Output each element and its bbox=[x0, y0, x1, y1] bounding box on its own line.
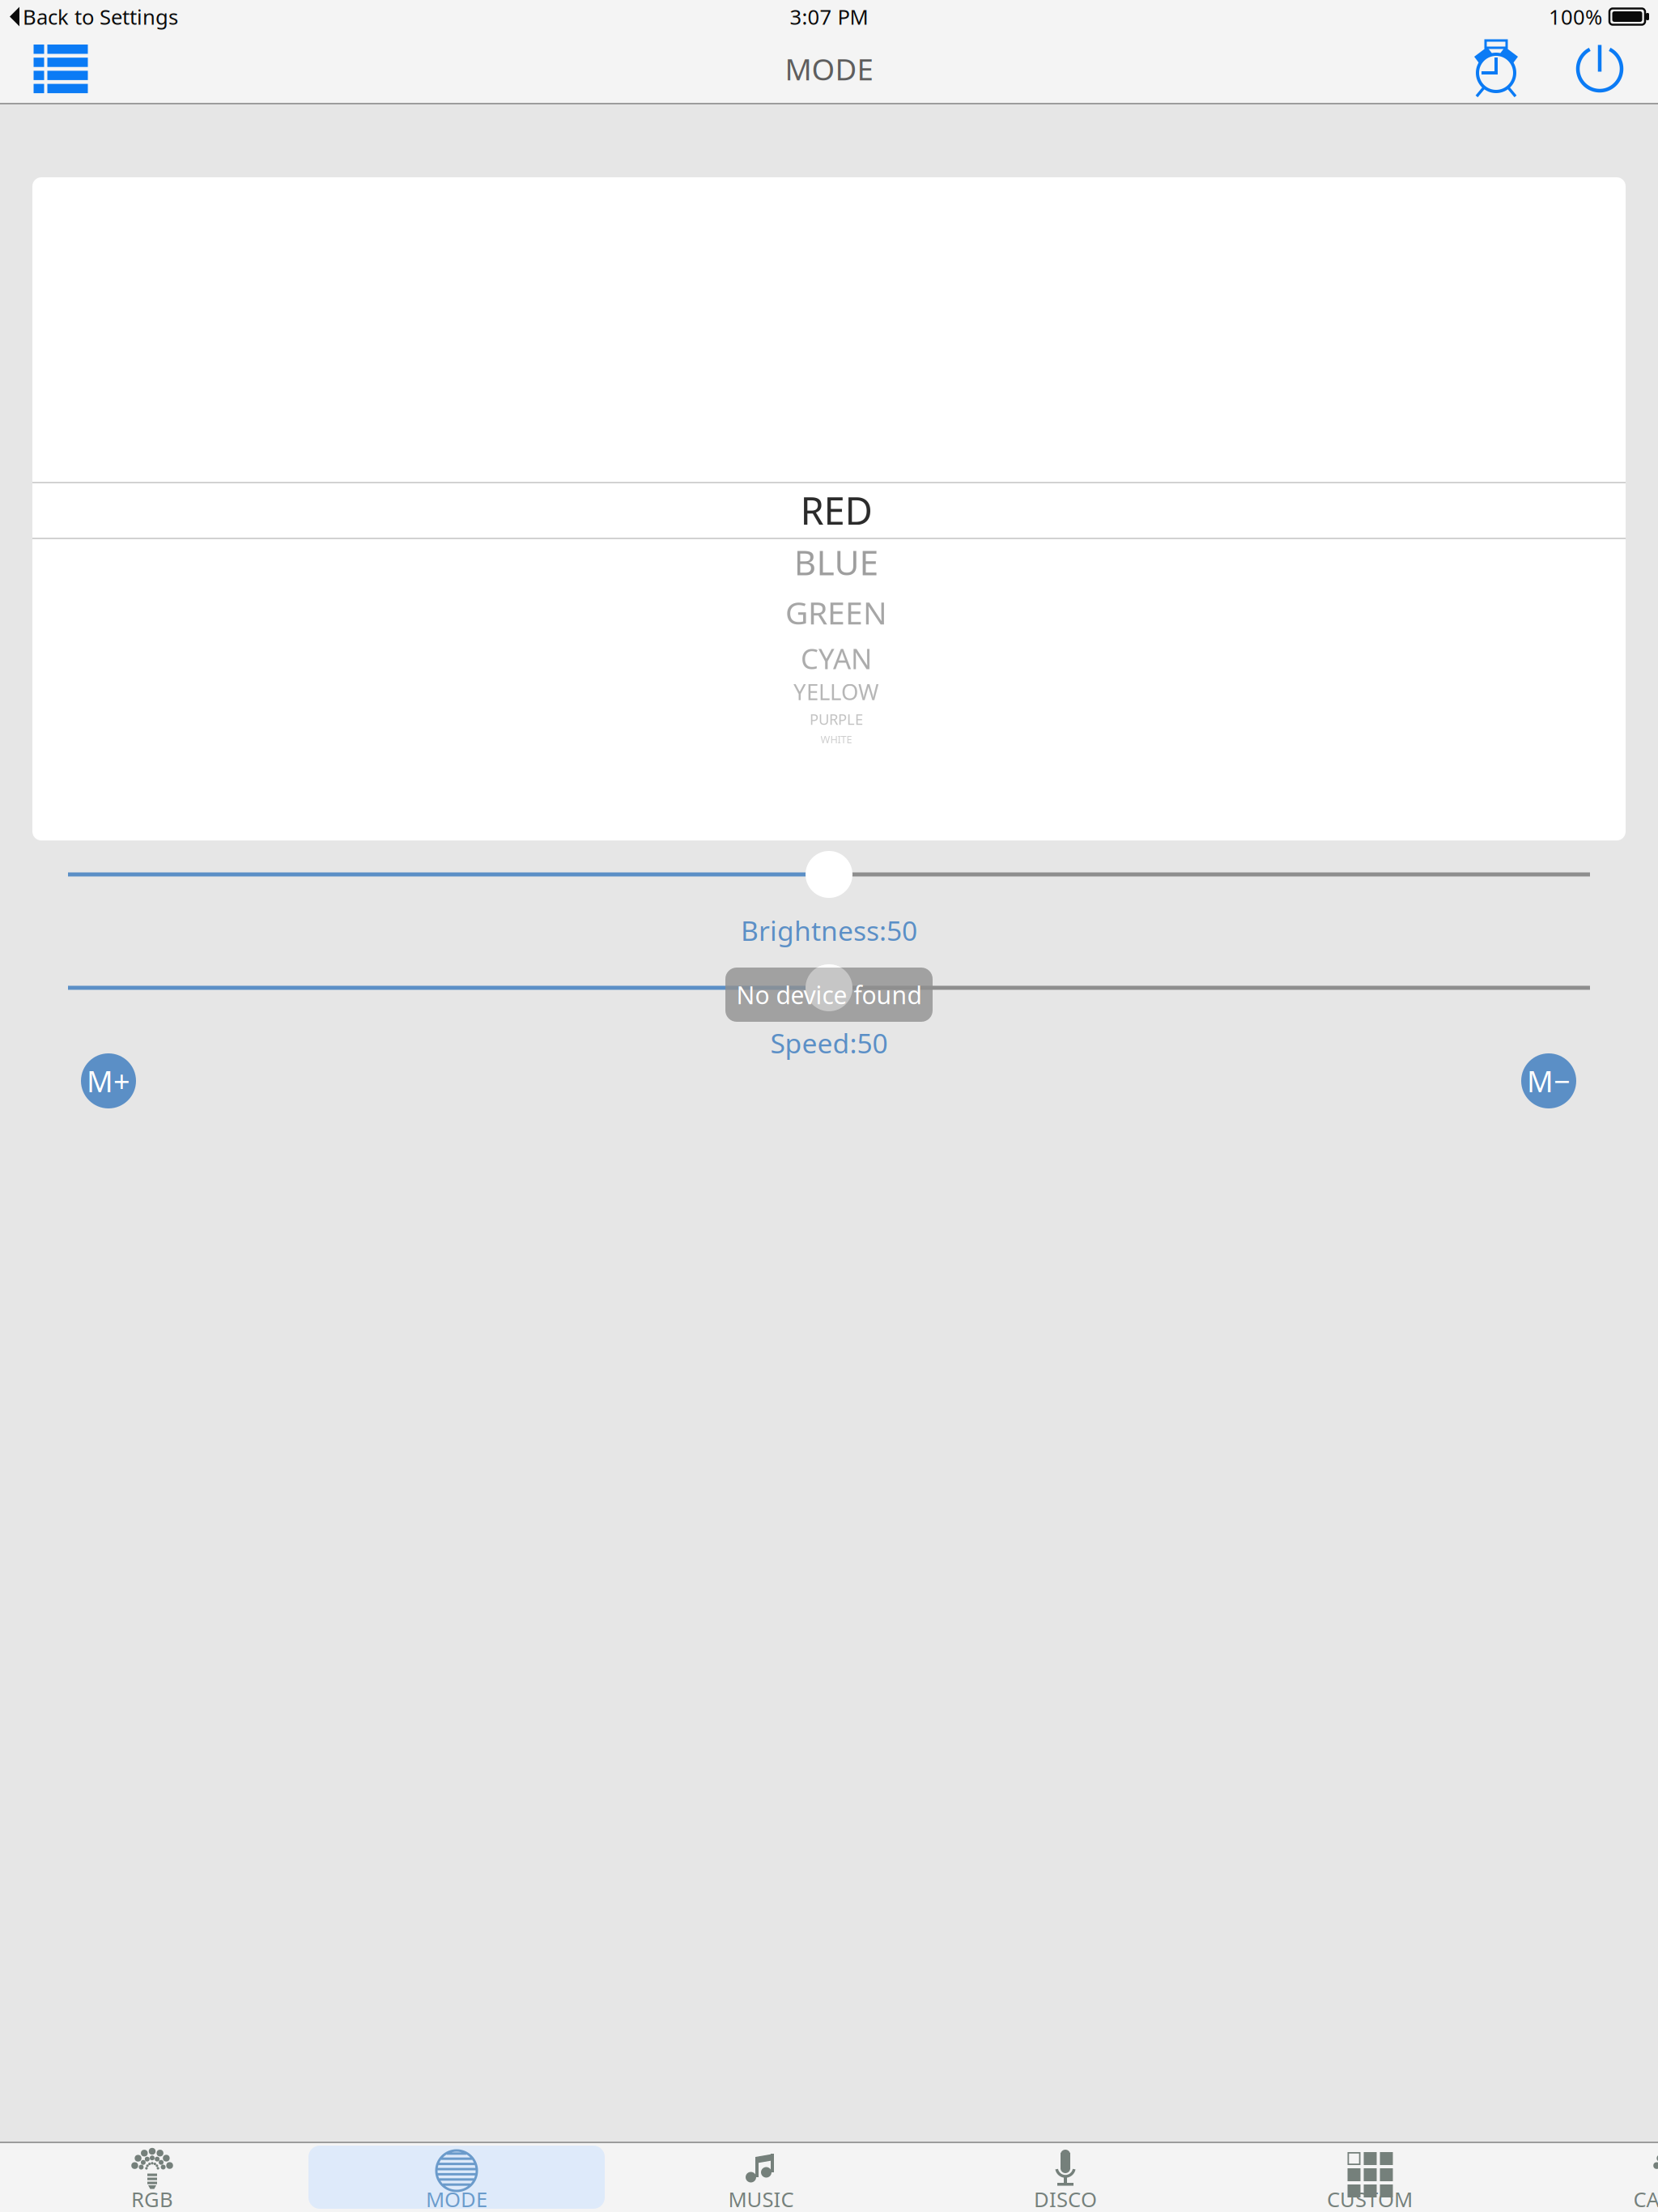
staticText: Back to Settings bbox=[23, 3, 178, 31]
button[interactable]: M− bbox=[1521, 1053, 1576, 1108]
staticText: CAMERA bbox=[1633, 2185, 1658, 2212]
button[interactable]: Power bbox=[1555, 33, 1644, 104]
staticText: M− bbox=[1527, 1061, 1571, 1101]
button[interactable]: CUSTOM bbox=[1218, 2142, 1522, 2212]
staticText: Speed:50 bbox=[770, 1024, 888, 1061]
button[interactable]: MUSIC bbox=[609, 2142, 913, 2212]
staticText: RED bbox=[800, 484, 872, 536]
staticText: No device found bbox=[736, 978, 922, 1011]
staticText: CUSTOM bbox=[1327, 2185, 1413, 2212]
button[interactable]: Menu bbox=[0, 33, 121, 104]
staticText: WHITE bbox=[820, 732, 852, 746]
staticText: MODE bbox=[785, 49, 873, 89]
button[interactable]: Timer bbox=[1452, 33, 1541, 104]
staticText: RGB bbox=[131, 2185, 173, 2212]
staticText: GREEN bbox=[785, 591, 887, 634]
staticText: MODE bbox=[426, 2185, 487, 2212]
button[interactable]: Back to Settings bbox=[0, 0, 188, 33]
staticText: DISCO bbox=[1034, 2185, 1097, 2212]
staticText: MUSIC bbox=[728, 2185, 794, 2212]
button[interactable]: RGB bbox=[0, 2142, 304, 2212]
staticText: BLUE bbox=[794, 538, 879, 585]
staticText: Brightness:50 bbox=[741, 912, 917, 949]
button[interactable]: M+ bbox=[81, 1053, 136, 1108]
staticText: 100% bbox=[1549, 3, 1602, 31]
button[interactable]: DISCO bbox=[913, 2142, 1218, 2212]
staticText: PURPLE bbox=[810, 709, 863, 729]
staticText: 3:07 PM bbox=[790, 3, 868, 31]
staticText: CYAN bbox=[801, 639, 872, 677]
staticText: M+ bbox=[87, 1061, 130, 1101]
button[interactable]: CAMERA bbox=[1522, 2142, 1658, 2212]
button[interactable]: MODE bbox=[304, 2142, 609, 2212]
staticText: YELLOW bbox=[793, 676, 879, 707]
